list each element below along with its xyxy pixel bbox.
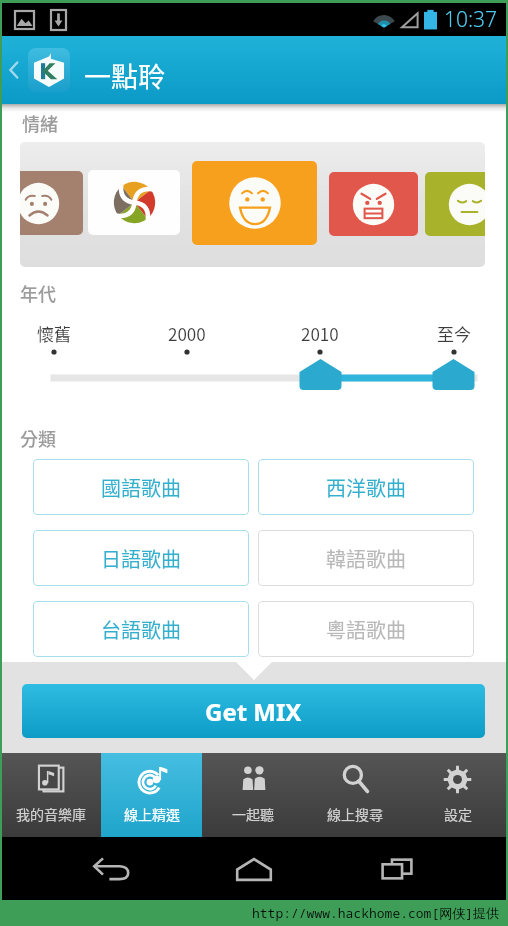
staticText: 韓語歌曲 — [326, 544, 406, 573]
button[interactable]: Mood HAPPY — [192, 161, 317, 245]
button[interactable]: 我的音樂庫 — [0, 753, 101, 837]
button[interactable]: 國語歌曲 — [33, 459, 249, 515]
button[interactable]: Mood PIN — [88, 170, 180, 235]
staticText: 至今 — [437, 321, 471, 346]
button[interactable]: Mood ANGRY — [329, 172, 418, 236]
staticText: 日語歌曲 — [101, 544, 181, 573]
staticText: 分類 — [20, 425, 56, 451]
button[interactable]: Home — [222, 837, 286, 900]
staticText: 懷舊 — [37, 321, 71, 346]
staticText: 10:37 — [444, 5, 498, 34]
button[interactable]: 台語歌曲 — [33, 601, 249, 657]
staticText: 台語歌曲 — [101, 615, 181, 644]
button[interactable]: 設定 — [406, 753, 508, 837]
staticText: 設定 — [444, 804, 472, 824]
staticText: Get MIX — [205, 695, 302, 728]
staticText: 情緒 — [22, 110, 58, 136]
button[interactable]: 線上精選 — [101, 753, 202, 837]
staticText: 粵語歌曲 — [326, 615, 406, 644]
button[interactable]: 日語歌曲 — [33, 530, 249, 586]
staticText: 2010 — [301, 321, 339, 346]
button[interactable]: Back — [0, 42, 28, 98]
staticText: 我的音樂庫 — [16, 804, 86, 824]
staticText: 國語歌曲 — [101, 473, 181, 502]
staticText: 西洋歌曲 — [326, 473, 406, 502]
staticText: 線上精選 — [124, 804, 180, 824]
button[interactable]: Recents — [365, 837, 429, 900]
staticText: 一點聆 — [84, 56, 165, 95]
button[interactable]: 線上搜尋 — [304, 753, 406, 837]
button[interactable]: 韓語歌曲 — [258, 530, 474, 586]
staticText: 線上搜尋 — [327, 804, 383, 824]
button[interactable]: 一起聽 — [202, 753, 304, 837]
button[interactable]: Mood CALM — [425, 172, 485, 236]
button[interactable]: Mood SAD — [20, 171, 83, 235]
button[interactable]: Back — [79, 837, 143, 900]
staticText: 年代 — [20, 280, 56, 306]
staticText: 一起聽 — [232, 804, 274, 824]
button[interactable]: KKBOX logo — [28, 48, 70, 92]
button[interactable]: 西洋歌曲 — [258, 459, 474, 515]
staticText: 2000 — [168, 321, 206, 346]
button[interactable]: 粵語歌曲 — [258, 601, 474, 657]
staticText: http://www.hackhome.com[网侠]提供 — [252, 904, 500, 922]
button[interactable]: Get MIX — [22, 684, 485, 738]
